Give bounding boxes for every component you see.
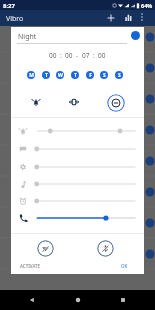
button[interactable]: Silent [107, 94, 125, 112]
button[interactable]: Home [71, 293, 85, 307]
button[interactable]: S [100, 71, 108, 79]
staticText: F [89, 72, 92, 79]
button[interactable]: F [86, 71, 94, 79]
button[interactable] [33, 160, 140, 174]
staticText: Vibro [6, 14, 24, 24]
button[interactable]: ACTIVATE [17, 260, 44, 272]
staticText: W [58, 72, 63, 79]
button[interactable]: M [27, 71, 35, 79]
button[interactable]: Statistics [121, 10, 136, 25]
staticText: 00 [49, 51, 57, 60]
button[interactable]: More options [135, 10, 149, 24]
button[interactable]: Vibrate [65, 93, 83, 111]
staticText: : [93, 51, 95, 60]
button[interactable]: W [56, 71, 64, 79]
button[interactable] [33, 142, 140, 156]
staticText: 64% [141, 2, 153, 9]
staticText: : [60, 51, 62, 60]
button[interactable]: Back [25, 293, 39, 307]
button[interactable] [33, 194, 140, 208]
button[interactable]: 00 [97, 51, 107, 60]
staticText: ACTIVATE [20, 263, 41, 269]
button[interactable]: Ring [27, 93, 45, 111]
staticText: 00 [98, 51, 106, 60]
button[interactable] [33, 211, 140, 225]
staticText: 8:27 [3, 2, 15, 10]
button[interactable]: Recent apps [116, 293, 130, 307]
button[interactable]: 00 [48, 51, 58, 60]
staticText: S [103, 72, 106, 79]
staticText: M [29, 72, 34, 79]
staticText: - [76, 51, 79, 60]
staticText: 07 [82, 51, 90, 60]
button[interactable] [33, 177, 140, 191]
staticText: 00 [65, 51, 73, 60]
button[interactable]: Bluetooth off [97, 240, 114, 257]
button[interactable]: T [71, 71, 79, 79]
staticText: S [118, 72, 121, 79]
button[interactable]: Wi-Fi off [37, 240, 54, 257]
staticText: OK [121, 263, 128, 269]
button[interactable]: OK [118, 260, 131, 272]
button[interactable]: 00 [64, 51, 74, 60]
button[interactable]: 07 [81, 51, 91, 60]
button[interactable]: Choose colour [127, 27, 144, 44]
button[interactable]: S [115, 71, 123, 79]
button[interactable] [33, 124, 140, 138]
staticText: T [74, 72, 77, 79]
button[interactable]: Add [103, 10, 118, 25]
staticText: Night [18, 32, 37, 42]
button[interactable]: T [42, 71, 50, 79]
staticText: T [45, 72, 48, 79]
